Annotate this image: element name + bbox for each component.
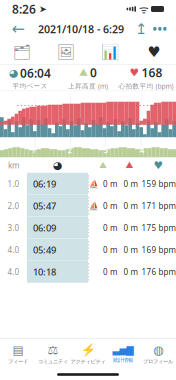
staticText: 3.0 — [7, 222, 19, 233]
staticText: ♥ — [129, 67, 139, 79]
staticText: ⛵ — [89, 179, 99, 188]
staticText: ◍ — [153, 343, 163, 357]
button[interactable]: 3.0 — [0, 217, 176, 239]
button[interactable]: Back — [6, 19, 30, 39]
staticText: 0 — [90, 65, 97, 81]
staticText: 168 — [141, 65, 162, 81]
button[interactable]: Share — [132, 19, 150, 39]
staticText: 0 m — [103, 222, 117, 233]
staticText: 2.0 — [7, 200, 19, 211]
staticText: コミュニティ — [38, 358, 68, 365]
button[interactable]: Heart rate — [132, 40, 176, 64]
button[interactable]: 1.0 — [0, 173, 176, 195]
staticText: 159 bpm — [141, 178, 175, 189]
staticText: 169 bpm — [141, 244, 175, 255]
staticText: ◕ — [53, 159, 62, 171]
staticText: ▤ — [12, 343, 23, 357]
staticText: 🗂 — [12, 44, 31, 60]
staticText: 4.0 — [7, 244, 19, 255]
staticText: 8:26 — [12, 1, 36, 17]
staticText: ↥ — [135, 21, 147, 37]
staticText: 統計情報 — [113, 357, 133, 363]
button[interactable]: Charts — [88, 40, 132, 64]
staticText: 06:09 — [33, 222, 56, 234]
button[interactable]: アクティビティ — [70, 339, 105, 369]
staticText: ◕ — [9, 67, 18, 79]
button[interactable]: More options — [150, 19, 170, 39]
button[interactable]: フィード — [0, 339, 35, 369]
staticText: ♥ — [147, 44, 160, 60]
staticText: ⚡ — [80, 343, 95, 357]
staticText: km — [8, 160, 19, 171]
button[interactable]: Map — [0, 40, 44, 64]
staticText: 4.0 — [7, 266, 19, 277]
staticText: ▃▅▇ — [112, 345, 133, 355]
staticText: 平均ペース — [12, 82, 47, 90]
staticText: 05:49 — [33, 244, 56, 256]
staticText: 0 m — [103, 200, 117, 211]
staticText: 1 — [31, 145, 36, 155]
staticText: 0 m — [103, 244, 117, 255]
staticText: 上昇高度 (m) — [68, 82, 108, 90]
staticText: 0 m — [103, 178, 117, 189]
button[interactable]: コミュニティ — [35, 339, 70, 369]
staticText: 0 m — [123, 200, 137, 211]
staticText: 175 bpm — [141, 222, 175, 233]
staticText: 📊 — [101, 44, 119, 60]
staticText: 0 m — [103, 266, 117, 277]
button[interactable]: 統計情報 — [105, 339, 140, 369]
staticText: 4 — [140, 145, 145, 155]
staticText: 1.0 — [7, 178, 19, 189]
staticText: 心拍数平均 (bpm) — [118, 82, 173, 90]
staticText: ← — [11, 20, 24, 38]
staticText: ⚖ — [47, 343, 58, 357]
staticText: 10:18 — [33, 266, 56, 278]
button[interactable]: 2.0 — [0, 195, 176, 217]
staticText: 0 m — [123, 266, 137, 277]
staticText: 2021/10/18 - 6:29 — [38, 22, 124, 36]
staticText: ⛰ — [125, 161, 133, 170]
staticText: 171 bpm — [141, 200, 175, 211]
staticText: ♥ — [153, 159, 163, 171]
staticText: アクティビティ — [70, 358, 105, 365]
staticText: 06:04 — [20, 65, 51, 81]
staticText: 06:19 — [33, 178, 56, 190]
staticText: 0 m — [123, 244, 137, 255]
staticText: ᯤ — [136, 2, 149, 16]
staticText: 0 m — [123, 222, 137, 233]
button[interactable]: 4.0 — [0, 261, 176, 283]
staticText: ⛵ — [89, 201, 99, 210]
staticText: ⛰ — [79, 67, 88, 78]
button[interactable]: プロフィール — [140, 339, 175, 369]
button[interactable]: Photos — [44, 40, 88, 64]
staticText: 2 — [67, 145, 72, 155]
staticText: プロフィール — [143, 358, 173, 365]
staticText: 🖼 — [56, 44, 75, 60]
staticText: 05:47 — [33, 200, 56, 212]
staticText: 3 — [104, 145, 109, 155]
staticText: ⛰ — [99, 161, 107, 170]
staticText: 0 m — [123, 178, 137, 189]
staticText: 176 bpm — [141, 266, 175, 277]
staticText: ••• — [152, 21, 167, 37]
staticText: フィード — [8, 358, 28, 365]
button[interactable]: 4.0 — [0, 239, 176, 261]
staticText: ➤ — [36, 4, 47, 14]
